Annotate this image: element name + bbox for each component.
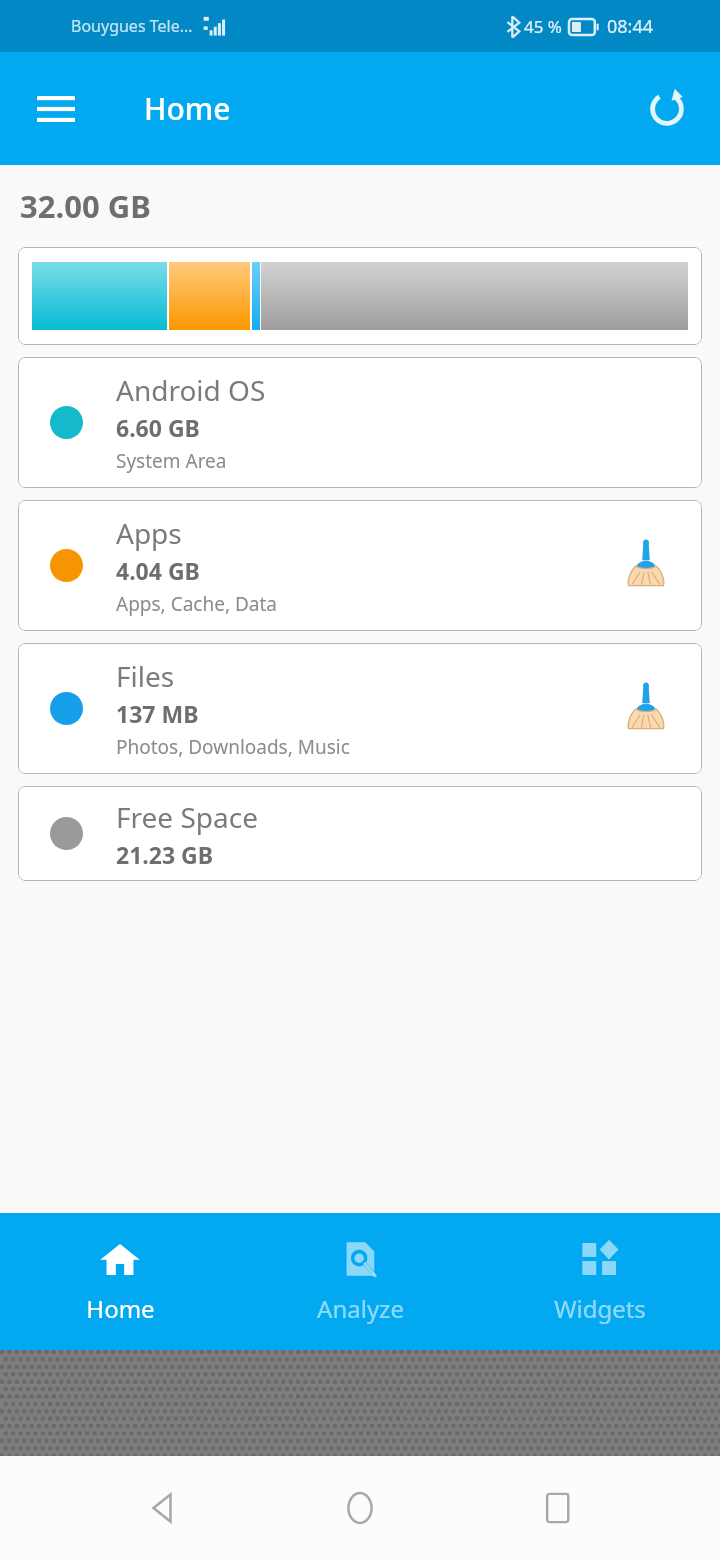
staticText: System Area [116,448,227,474]
button[interactable]: Refresh [632,74,702,144]
button[interactable] [18,247,702,345]
button[interactable]: Back [128,1473,198,1543]
button[interactable]: Files [18,643,702,774]
button[interactable]: Apps [18,500,702,631]
button[interactable]: Open navigation menu [18,71,94,147]
staticText: 45 % [524,15,562,38]
button[interactable]: Widgets [480,1213,720,1350]
staticText: Free Space [116,798,258,836]
staticText: 137 MB [116,698,199,729]
button[interactable]: Recent apps [523,1473,593,1543]
staticText: Apps [116,514,182,552]
staticText: Android OS [116,371,266,409]
staticText: 08:44 [607,14,654,39]
staticText: Photos, Downloads, Music [116,734,350,760]
staticText: Home [86,1292,155,1325]
button[interactable]: Analyze [240,1213,480,1350]
button[interactable]: Home [325,1473,395,1543]
button[interactable]: Android OS [18,357,702,488]
staticText: 32.00 GB [20,185,151,227]
staticText: 4.04 GB [116,555,200,586]
button[interactable]: Free Space [18,786,702,881]
button[interactable]: Clean Files [612,675,680,743]
staticText: Bouygues Tele… [71,15,193,37]
staticText: 21.23 GB [116,839,214,870]
staticText: Widgets [554,1292,646,1325]
button[interactable]: Clean Apps [612,532,680,600]
staticText: 6.60 GB [116,412,200,443]
button[interactable]: Home [0,1213,240,1350]
staticText: Home [144,88,231,129]
staticText: Analyze [317,1292,404,1325]
staticText: Files [116,657,175,695]
staticText: Apps, Cache, Data [116,591,277,617]
